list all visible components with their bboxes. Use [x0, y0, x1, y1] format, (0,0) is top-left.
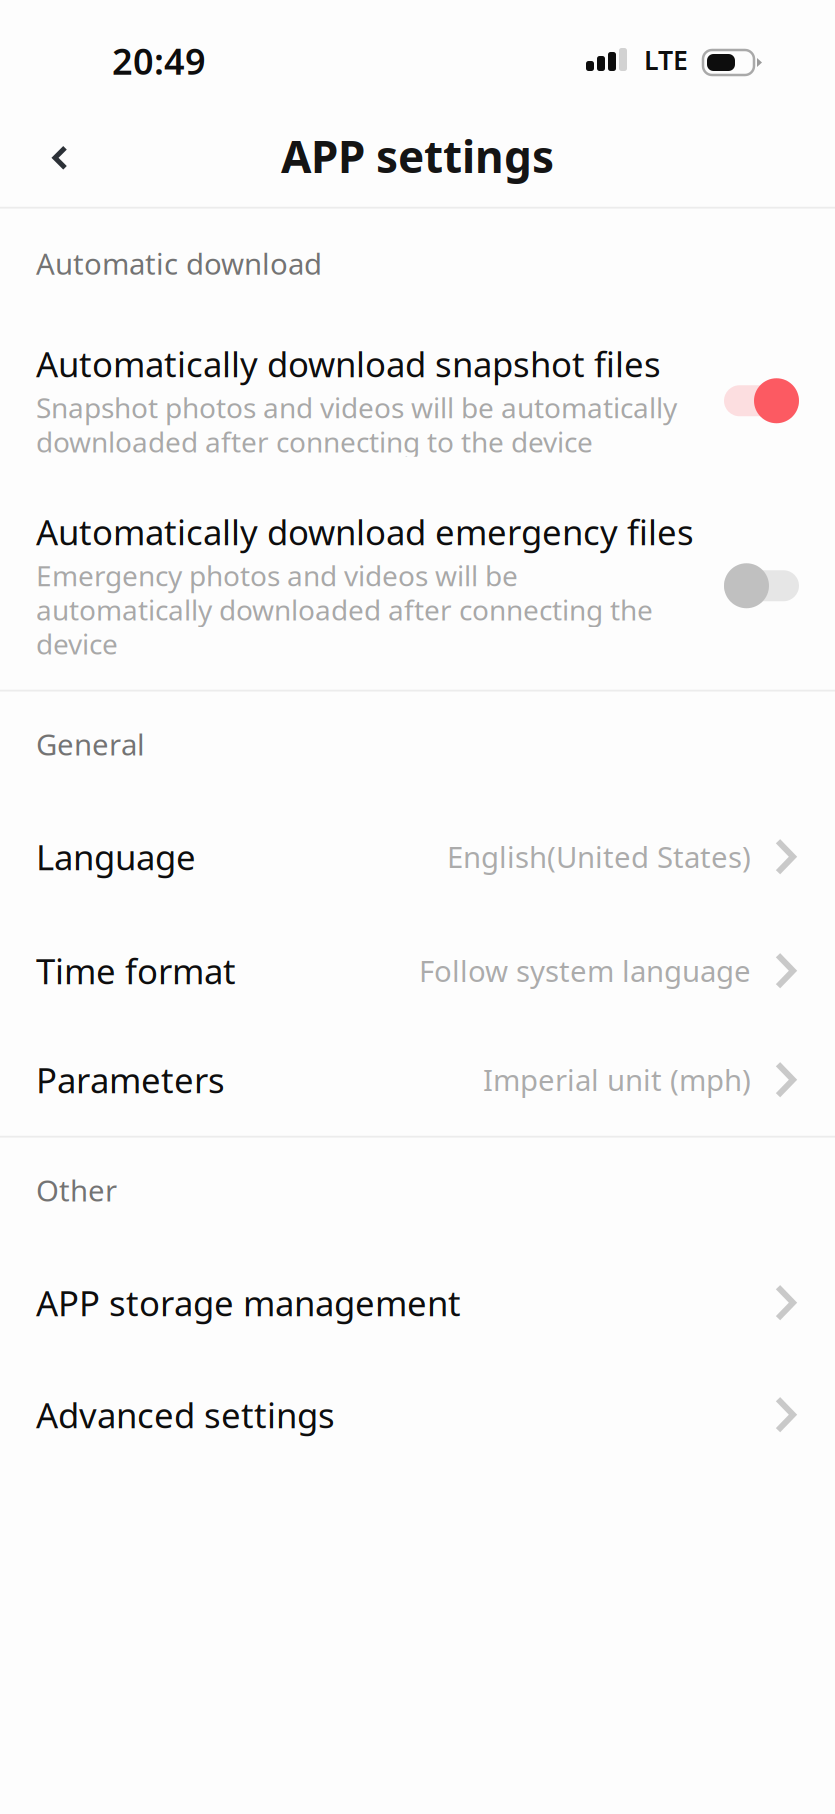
staticText: APP settings — [281, 127, 554, 185]
staticText: 20:49 — [112, 37, 206, 85]
staticText: General — [36, 725, 145, 764]
staticText: Snapshot photos and videos will be autom… — [36, 389, 677, 426]
staticText: device — [36, 625, 118, 662]
staticText: English(United States) — [447, 837, 751, 876]
staticText: Other — [36, 1171, 117, 1210]
staticText: Emergency photos and videos will be — [36, 557, 518, 594]
button[interactable]: Language — [0, 834, 835, 880]
staticText: LTE — [644, 42, 688, 77]
staticText: Follow system language — [419, 951, 751, 990]
button[interactable]: Automatically download emergency files — [0, 509, 835, 659]
staticText: APP storage management — [36, 1280, 461, 1326]
staticText: Automatically download snapshot files — [36, 341, 661, 387]
button[interactable]: Back — [23, 127, 97, 185]
button[interactable]: Parameters — [0, 1057, 835, 1103]
staticText: Parameters — [36, 1057, 225, 1103]
staticText: Advanced settings — [36, 1392, 335, 1438]
staticText: Language — [36, 834, 196, 880]
staticText: Automatically download emergency files — [36, 509, 694, 555]
staticText: downloaded after connecting to the devic… — [36, 423, 593, 460]
button[interactable]: APP storage management — [0, 1280, 835, 1326]
button[interactable]: Automatically download snapshot files — [0, 341, 835, 457]
staticText: Imperial unit (mph) — [483, 1060, 751, 1099]
button[interactable]: Advanced settings — [0, 1392, 835, 1438]
staticText: Time format — [36, 948, 236, 994]
staticText: automatically downloaded after connectin… — [36, 591, 653, 628]
staticText: Automatic download — [36, 244, 322, 283]
button[interactable]: Time format — [0, 948, 835, 994]
